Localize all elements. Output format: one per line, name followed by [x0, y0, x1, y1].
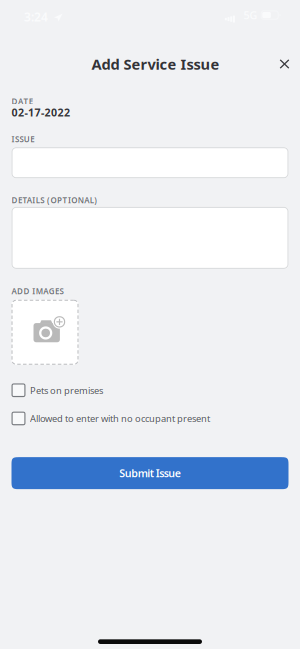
staticText: ISSUE: [11, 134, 34, 144]
staticText: DATE: [11, 96, 33, 107]
button[interactable]: Add image: [11, 300, 78, 365]
staticText: Add Service Issue: [91, 54, 219, 74]
staticText: DETAILS (OPTIONAL): [11, 195, 97, 205]
button[interactable]: Allowed to enter with no occupant presen…: [11, 409, 288, 427]
staticText: Pets on premises: [30, 384, 103, 396]
staticText: Submit Issue: [119, 466, 181, 480]
button[interactable]: Submit Issue: [11, 457, 288, 489]
staticText: 02-17-2022: [11, 105, 70, 119]
staticText: Allowed to enter with no occupant presen…: [30, 412, 210, 425]
staticText: ADD IMAGES: [11, 286, 64, 296]
staticText: 3:24: [24, 9, 48, 25]
button[interactable]: Pets on premises: [11, 381, 288, 399]
button[interactable]: Close: [271, 51, 297, 77]
